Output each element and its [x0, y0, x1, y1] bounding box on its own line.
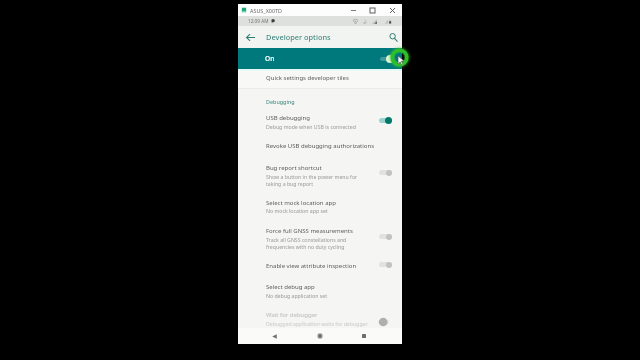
button[interactable]: Minimize — [344, 4, 362, 16]
button[interactable]: Maximize — [363, 4, 381, 16]
staticText: No mock location app set — [266, 207, 328, 214]
staticText: Track all GNSS constellations and — [266, 236, 347, 243]
button[interactable]: Recents — [355, 328, 373, 344]
staticText: USB debugging — [266, 114, 310, 122]
button[interactable] — [238, 303, 402, 326]
staticText: Debug mode when USB is connected — [266, 123, 356, 130]
staticText: Wait for debugger — [266, 311, 318, 319]
button[interactable]: Back — [265, 328, 283, 344]
staticText: taking a bug report — [266, 180, 314, 187]
staticText: Select mock location app — [266, 199, 336, 207]
staticText: Show a button in the power menu for — [266, 173, 358, 180]
staticText: ASUS_X00TD — [250, 7, 282, 14]
button[interactable]: Back — [241, 26, 259, 48]
button[interactable] — [238, 190, 402, 219]
staticText: Developer options — [266, 32, 331, 42]
button[interactable]: On — [238, 48, 402, 69]
staticText: frequencies with no duty cycling — [266, 243, 345, 250]
staticText: Bug report shortcut — [266, 164, 322, 172]
staticText: Revoke USB debugging authorizations — [266, 142, 375, 150]
button[interactable] — [238, 107, 402, 133]
staticText: Quick settings developer tiles — [266, 74, 349, 82]
button[interactable] — [238, 275, 402, 303]
staticText: On — [265, 54, 275, 63]
staticText: 12:09 AM — [248, 18, 269, 24]
button[interactable]: Search — [384, 26, 402, 48]
staticText: Debugging — [266, 98, 295, 105]
staticText: Enable view attribute inspection — [266, 262, 357, 270]
staticText: No debug application set — [266, 292, 328, 299]
staticText: Force full GNSS measurements — [266, 227, 353, 235]
button[interactable]: Close — [383, 4, 401, 16]
button[interactable]: Home — [311, 328, 329, 344]
staticText: Debugged application waits for debugger — [266, 320, 368, 327]
button[interactable] — [238, 219, 402, 253]
button[interactable] — [238, 253, 402, 275]
staticText: Select debug app — [266, 283, 315, 291]
button[interactable] — [238, 133, 402, 155]
button[interactable] — [238, 155, 402, 190]
button[interactable] — [238, 69, 402, 88]
